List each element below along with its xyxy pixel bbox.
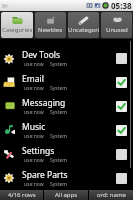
staticText: use:now bbox=[24, 157, 44, 164]
button[interactable]: Not selected bbox=[116, 53, 127, 64]
button[interactable]: ord: name bbox=[89, 190, 133, 200]
button[interactable]: Categories bbox=[1, 12, 33, 38]
button[interactable]: Messaging bbox=[0, 94, 133, 118]
button[interactable]: Selected bbox=[116, 101, 127, 112]
staticText: Messaging bbox=[22, 97, 66, 109]
staticText: Categories bbox=[2, 26, 33, 34]
staticText: System bbox=[50, 133, 67, 140]
button[interactable]: Selected bbox=[116, 77, 127, 88]
staticText: use:now bbox=[24, 133, 44, 140]
staticText: Newbies bbox=[38, 26, 63, 34]
button[interactable]: Spare Parts bbox=[0, 166, 133, 190]
staticText: All apps bbox=[55, 191, 78, 199]
button[interactable]: Settings bbox=[0, 142, 133, 166]
staticText: use:now bbox=[24, 85, 44, 92]
staticText: 4/16 rows bbox=[8, 191, 36, 199]
button[interactable]: All apps bbox=[44, 190, 88, 200]
button[interactable]: Newbies bbox=[35, 12, 66, 38]
button[interactable]: Music bbox=[0, 118, 133, 142]
staticText: use:now bbox=[24, 61, 44, 68]
button[interactable]: Not selected bbox=[116, 173, 127, 184]
button[interactable]: Uncategori bbox=[68, 12, 99, 38]
button[interactable]: Not selected bbox=[116, 149, 127, 160]
staticText: System bbox=[50, 157, 67, 164]
button[interactable]: Unused bbox=[101, 12, 132, 38]
staticText: Uncategori bbox=[68, 26, 99, 34]
staticText: Settings bbox=[22, 145, 55, 157]
staticText: System bbox=[50, 109, 67, 116]
staticText: use:now bbox=[24, 109, 44, 116]
staticText: System bbox=[50, 85, 67, 92]
staticText: ord: name bbox=[97, 191, 126, 199]
staticText: use:now bbox=[24, 181, 44, 188]
staticText: Dev Tools bbox=[22, 49, 61, 61]
button[interactable]: Dev Tools bbox=[0, 47, 133, 70]
staticText: Email bbox=[22, 73, 44, 85]
button[interactable]: 4/16 rows bbox=[0, 190, 43, 200]
staticText: Music bbox=[22, 121, 46, 133]
staticText: System bbox=[50, 61, 67, 68]
staticText: Spare Parts bbox=[22, 169, 68, 181]
staticText: System bbox=[50, 181, 67, 188]
staticText: Unused bbox=[106, 26, 128, 34]
button[interactable]: Selected bbox=[116, 125, 127, 136]
button[interactable]: Email bbox=[0, 70, 133, 94]
staticText: 05:38 bbox=[111, 0, 132, 11]
